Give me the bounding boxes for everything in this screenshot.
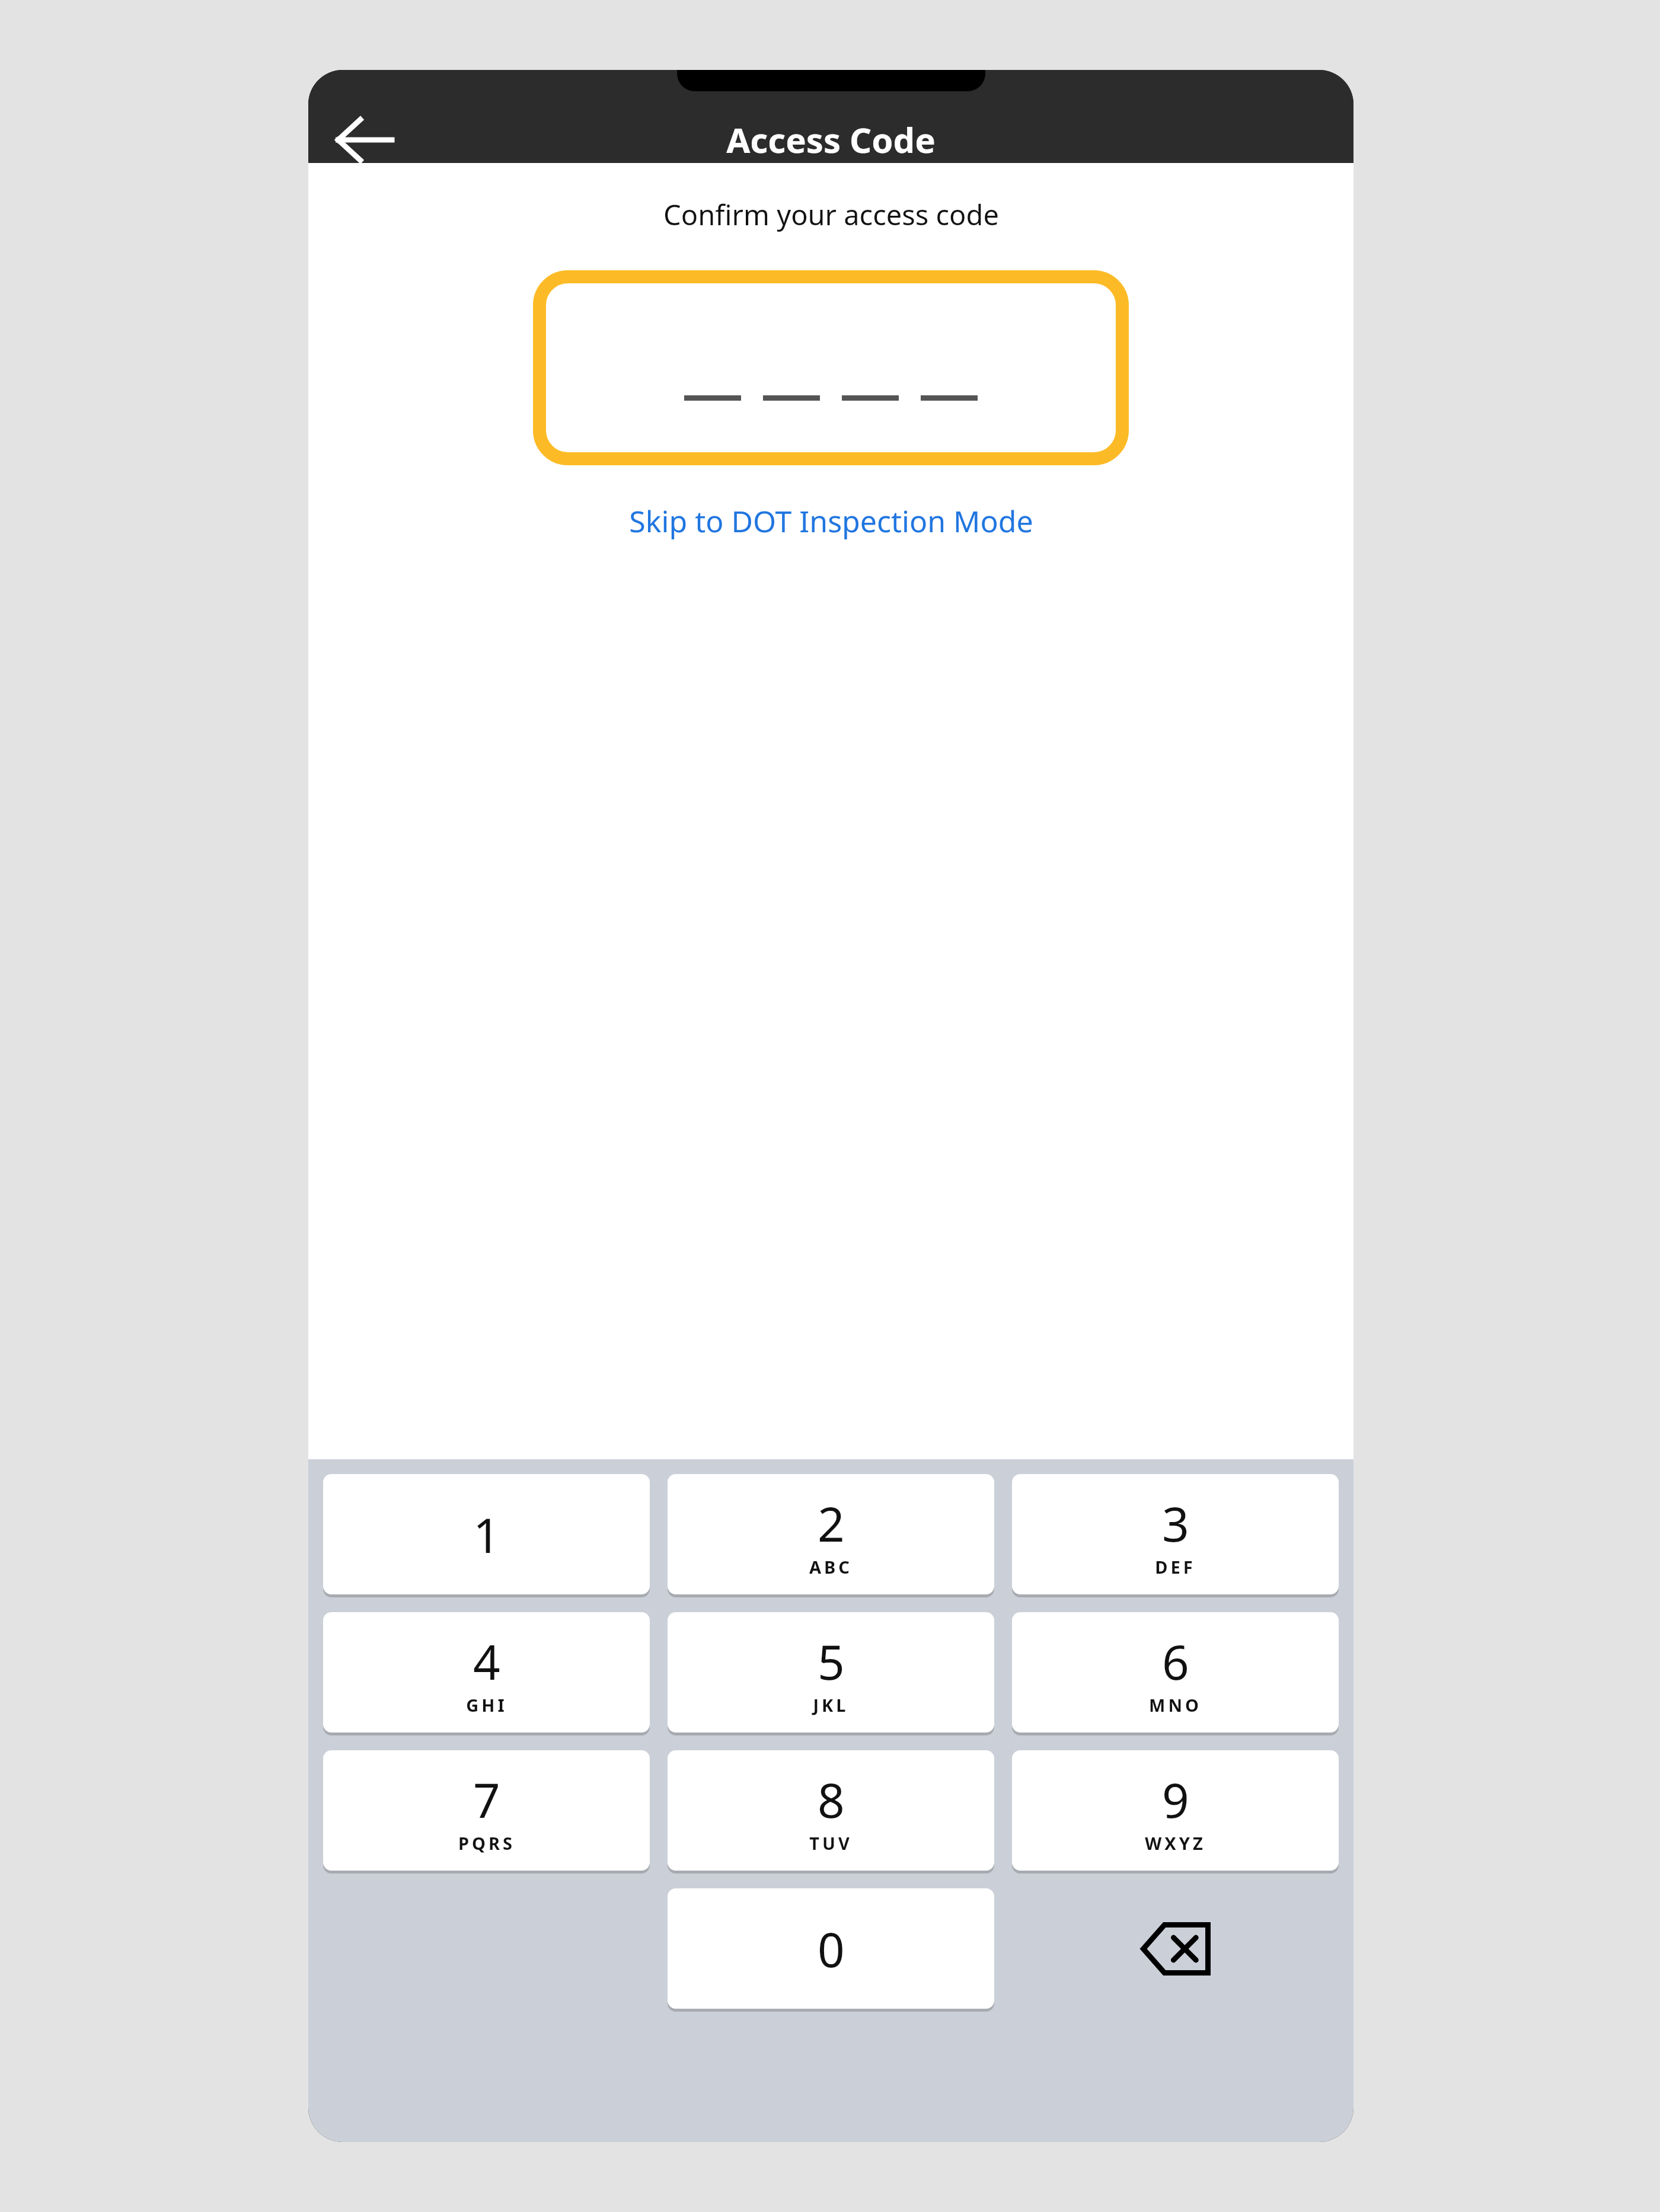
button[interactable]: 7 [323, 1750, 650, 1871]
button[interactable]: Back [319, 95, 408, 184]
staticText: WXYZ [1145, 1831, 1206, 1855]
staticText: 7 [473, 1767, 500, 1831]
button[interactable]: 9 [1012, 1750, 1339, 1871]
staticText: ABC [809, 1555, 853, 1578]
staticText: DEF [1155, 1555, 1196, 1578]
button[interactable]: 0 [668, 1888, 994, 2009]
button[interactable]: 1 [323, 1474, 650, 1594]
staticText: Access Code [308, 116, 1353, 163]
staticText: 6 [1162, 1629, 1189, 1693]
button[interactable]: 6 [1012, 1612, 1339, 1732]
button[interactable] [533, 270, 1129, 465]
staticText: 8 [818, 1767, 845, 1831]
staticText: 5 [818, 1629, 845, 1693]
staticText: PQRS [458, 1831, 515, 1855]
staticText: 3 [1162, 1491, 1189, 1555]
button[interactable]: 3 [1012, 1474, 1339, 1594]
staticText: Skip to DOT Inspection Mode [629, 501, 1033, 541]
staticText: 4 [473, 1629, 500, 1693]
staticText: 1 [473, 1502, 500, 1567]
button[interactable]: Skip to DOT Inspection Mode [615, 495, 1048, 547]
button[interactable]: 5 [668, 1612, 994, 1732]
button[interactable]: 2 [668, 1474, 994, 1594]
button[interactable]: Backspace [1012, 1888, 1339, 2009]
button[interactable]: 8 [668, 1750, 994, 1871]
staticText: Confirm your access code [663, 196, 999, 234]
staticText: TUV [809, 1831, 853, 1855]
staticText: 9 [1162, 1767, 1189, 1831]
staticText: GHI [466, 1693, 507, 1716]
staticText: 0 [818, 1916, 845, 1981]
staticText: JKL [813, 1693, 849, 1716]
button[interactable]: 4 [323, 1612, 650, 1732]
staticText: 2 [818, 1491, 845, 1555]
staticText: MNO [1149, 1693, 1202, 1716]
